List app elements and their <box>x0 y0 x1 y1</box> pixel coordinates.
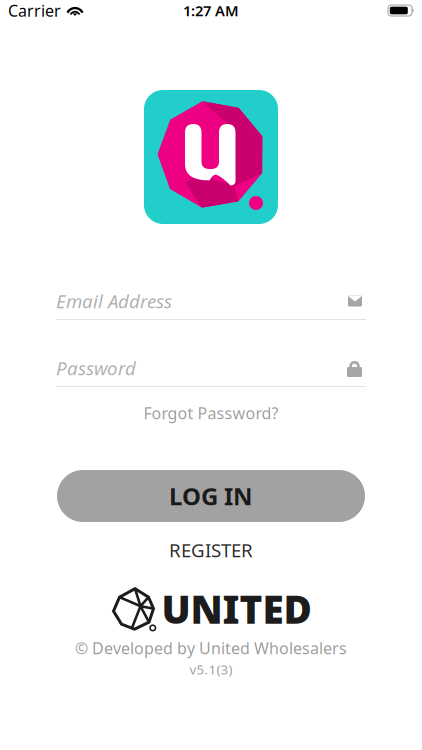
staticText: Forgot Password? <box>143 402 278 424</box>
button[interactable]: LOG IN <box>57 470 365 522</box>
staticText: © Developed by United Wholesalers <box>75 637 347 658</box>
button[interactable]: Forgot Password? <box>56 402 366 424</box>
staticText: LOG IN <box>169 480 253 512</box>
staticText: Email Address <box>56 289 172 313</box>
staticText: v5.1(3) <box>189 661 232 678</box>
staticText: 1:27 AM <box>183 1 239 20</box>
staticText: Password <box>56 356 136 380</box>
staticText: Carrier <box>8 0 61 21</box>
staticText: UNITED <box>161 583 311 634</box>
staticText: REGISTER <box>169 538 253 562</box>
button[interactable]: REGISTER <box>111 539 311 561</box>
